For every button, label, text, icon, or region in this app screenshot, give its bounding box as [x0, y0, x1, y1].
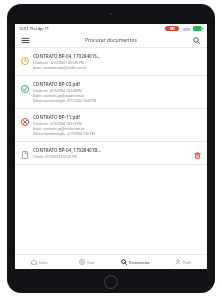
button[interactable]: Excluir	[192, 150, 202, 160]
button[interactable]: Pesquisar	[191, 35, 202, 46]
button[interactable]: Documentos	[111, 255, 159, 269]
staticText: Autor : contrato+qq@reader.com.br	[33, 127, 85, 131]
staticText: CONTRATO BP-04_17028401S...	[33, 53, 101, 59]
staticText: Documentos	[129, 260, 150, 264]
button[interactable]: CONTRATO BP-03.pdf	[15, 76, 207, 109]
staticText: Criar	[87, 260, 95, 264]
staticText: Criado em : 4/15/2024 12:59:05 PM	[33, 61, 84, 65]
button[interactable]: CONTRATO BP-11.pdf	[15, 109, 207, 142]
staticText: Autor : contrato+pp@reader.com.br	[33, 94, 85, 98]
staticText: Início	[39, 260, 48, 264]
button[interactable]: CONTRATO BP-04_17028401S...	[15, 48, 207, 76]
staticText: CONTRATO BP-03.pdf	[33, 81, 81, 87]
staticText: Autor : contrato+mm@reader.com.br	[33, 66, 87, 70]
staticText: CONTRATO BP-11.pdf	[33, 114, 81, 120]
staticText: Procurar documentos	[85, 37, 137, 44]
staticText: Perfil	[183, 260, 192, 264]
staticText: Última movimentação : 4/17/2024 1:56 PM	[33, 132, 95, 136]
staticText: REC	[170, 27, 175, 31]
staticText: Criado : 4/10/2024 4:55:20 PM	[33, 155, 77, 159]
staticText: Criado em : 4/15/2024 1:03:18 PM	[33, 122, 82, 126]
staticText: Criado em : 4/15/2024 1:03:28 PM	[33, 89, 82, 93]
staticText: 12:51 Thu Apr 11	[19, 26, 49, 31]
button[interactable]: Início	[15, 255, 63, 269]
staticText: 100%	[182, 27, 191, 31]
staticText: Última movimentação : 4/17/2024 10:43 PM	[33, 99, 97, 103]
button[interactable]: Perfil	[159, 255, 207, 269]
button[interactable]: Criar	[63, 255, 111, 269]
button[interactable]: CONTRATO BP-04_17028401B...	[15, 142, 207, 165]
staticText: CONTRATO BP-04_17028401B...	[33, 147, 102, 153]
button[interactable]: Menu	[20, 35, 31, 46]
